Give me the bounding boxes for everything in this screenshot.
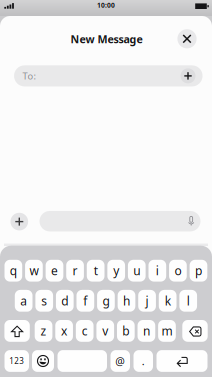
button[interactable]: @ xyxy=(110,350,130,372)
staticText: f xyxy=(83,293,87,309)
staticText: a xyxy=(20,293,27,309)
staticText: t xyxy=(94,263,98,279)
button[interactable]: Space xyxy=(57,350,107,372)
button[interactable]: Numbers xyxy=(4,350,29,372)
staticText: r xyxy=(73,263,78,279)
staticText: h xyxy=(123,293,130,309)
staticText: b xyxy=(122,323,129,339)
button[interactable]: v xyxy=(96,320,114,342)
staticText: e xyxy=(51,263,58,279)
button[interactable]: w xyxy=(25,260,43,282)
staticText: x xyxy=(61,323,67,339)
staticText: u xyxy=(133,263,140,279)
staticText: s xyxy=(41,293,47,309)
button[interactable]: i xyxy=(148,260,166,282)
staticText: q xyxy=(10,263,17,279)
button[interactable]: h xyxy=(118,290,135,312)
button[interactable]: Shift xyxy=(4,320,30,342)
staticText: d xyxy=(61,293,68,309)
button[interactable]: More options xyxy=(10,213,28,230)
button[interactable]: p xyxy=(190,260,207,282)
button[interactable]: j xyxy=(138,290,156,312)
staticText: v xyxy=(102,323,108,339)
button[interactable]: e xyxy=(46,260,63,282)
button[interactable]: To: xyxy=(14,65,202,86)
staticText: 123 xyxy=(9,356,24,366)
staticText: To: xyxy=(22,70,36,82)
button[interactable]: . xyxy=(133,350,153,372)
button[interactable]: d xyxy=(56,290,74,312)
staticText: 10:00 xyxy=(97,1,115,10)
button[interactable]: z xyxy=(35,320,52,342)
staticText: p xyxy=(195,263,202,279)
button[interactable]: t xyxy=(87,260,104,282)
staticText: w xyxy=(29,263,38,279)
button[interactable]: c xyxy=(76,320,93,342)
button[interactable]: q xyxy=(4,260,22,282)
button[interactable]: Add contact xyxy=(180,68,195,83)
staticText: z xyxy=(41,323,47,339)
button[interactable]: n xyxy=(138,320,155,342)
button[interactable]: Return xyxy=(156,350,207,372)
staticText: @ xyxy=(115,354,125,368)
staticText: o xyxy=(174,263,181,279)
staticText: j xyxy=(146,293,149,309)
staticText: c xyxy=(82,323,88,339)
staticText: i xyxy=(156,263,159,279)
staticText: k xyxy=(165,293,171,309)
button[interactable]: Close xyxy=(177,29,197,48)
button[interactable]: Emoji xyxy=(32,350,54,372)
button[interactable]: o xyxy=(169,260,187,282)
staticText: . xyxy=(142,354,145,368)
staticText: y xyxy=(113,263,119,279)
button[interactable]: m xyxy=(158,320,176,342)
staticText: n xyxy=(143,323,150,339)
button[interactable]: g xyxy=(97,290,115,312)
button[interactable]: l xyxy=(179,290,197,312)
button[interactable]: b xyxy=(117,320,135,342)
button[interactable]: Dictate xyxy=(184,215,198,229)
button[interactable]: k xyxy=(159,290,176,312)
button[interactable]: y xyxy=(107,260,125,282)
button[interactable]: u xyxy=(128,260,146,282)
button[interactable]: a xyxy=(15,290,32,312)
staticText: l xyxy=(187,293,190,309)
staticText: g xyxy=(102,293,109,309)
button[interactable]: r xyxy=(66,260,84,282)
button[interactable]: Message xyxy=(39,211,200,231)
staticText: New Message xyxy=(70,32,142,46)
button[interactable]: Delete xyxy=(182,320,208,342)
button[interactable]: x xyxy=(55,320,73,342)
staticText: m xyxy=(161,323,172,339)
button[interactable]: s xyxy=(35,290,53,312)
button[interactable]: f xyxy=(76,290,94,312)
